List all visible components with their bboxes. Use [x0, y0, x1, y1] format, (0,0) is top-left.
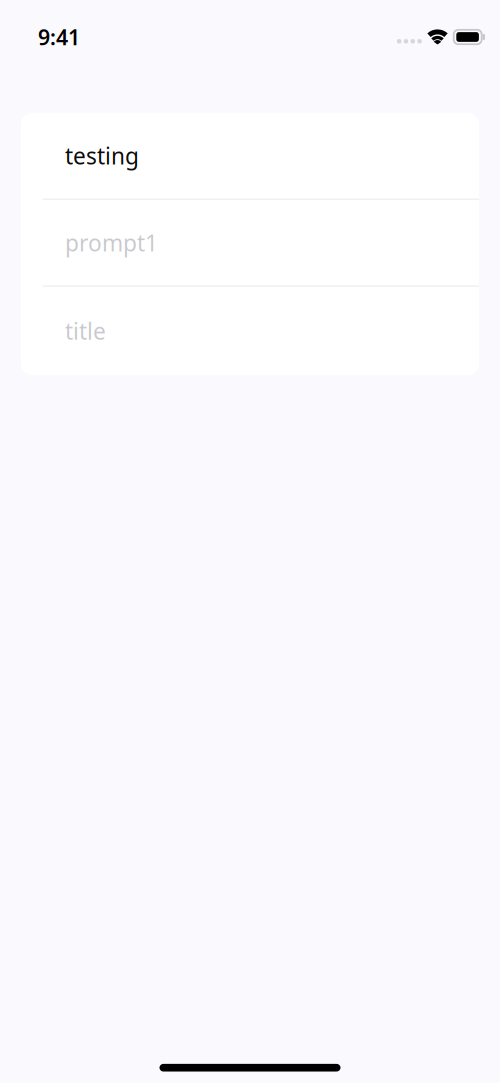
staticText: title: [65, 316, 106, 346]
button[interactable]: title: [21, 287, 479, 375]
staticText: prompt1: [65, 228, 158, 258]
staticText: 9:41: [38, 23, 80, 51]
button[interactable]: testing: [21, 113, 479, 198]
button[interactable]: prompt1: [21, 200, 479, 285]
staticText: testing: [65, 141, 139, 171]
